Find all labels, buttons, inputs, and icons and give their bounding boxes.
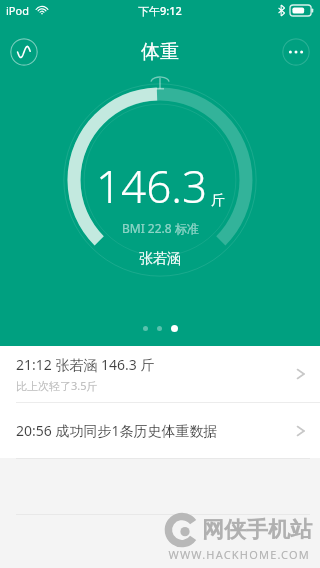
staticText: BMI 22.8 标准 — [122, 220, 199, 236]
staticText: 体重 — [141, 40, 179, 64]
staticText: 网侠手机站 — [202, 516, 312, 544]
staticText: 21:12 张若涵 146.3 斤 — [16, 355, 155, 374]
button[interactable]: 20:56 成功同步1条历史体重数据 — [0, 403, 320, 458]
staticText: iPod — [6, 3, 29, 18]
staticText: 20:56 成功同步1条历史体重数据 — [16, 421, 296, 440]
staticText: 下午9:12 — [138, 3, 182, 18]
staticText: 146.3 — [96, 156, 208, 216]
staticText: 比上次轻了3.5斤 — [16, 378, 98, 393]
staticText: 张若涵 — [139, 250, 181, 268]
button[interactable]: Measurements — [10, 38, 38, 66]
button[interactable]: More options — [282, 38, 310, 66]
staticText: WWW.HACKHOME.COM — [168, 547, 310, 562]
button[interactable]: 21:12 张若涵 146.3 斤 — [0, 346, 320, 402]
staticText: 斤 — [211, 192, 225, 210]
